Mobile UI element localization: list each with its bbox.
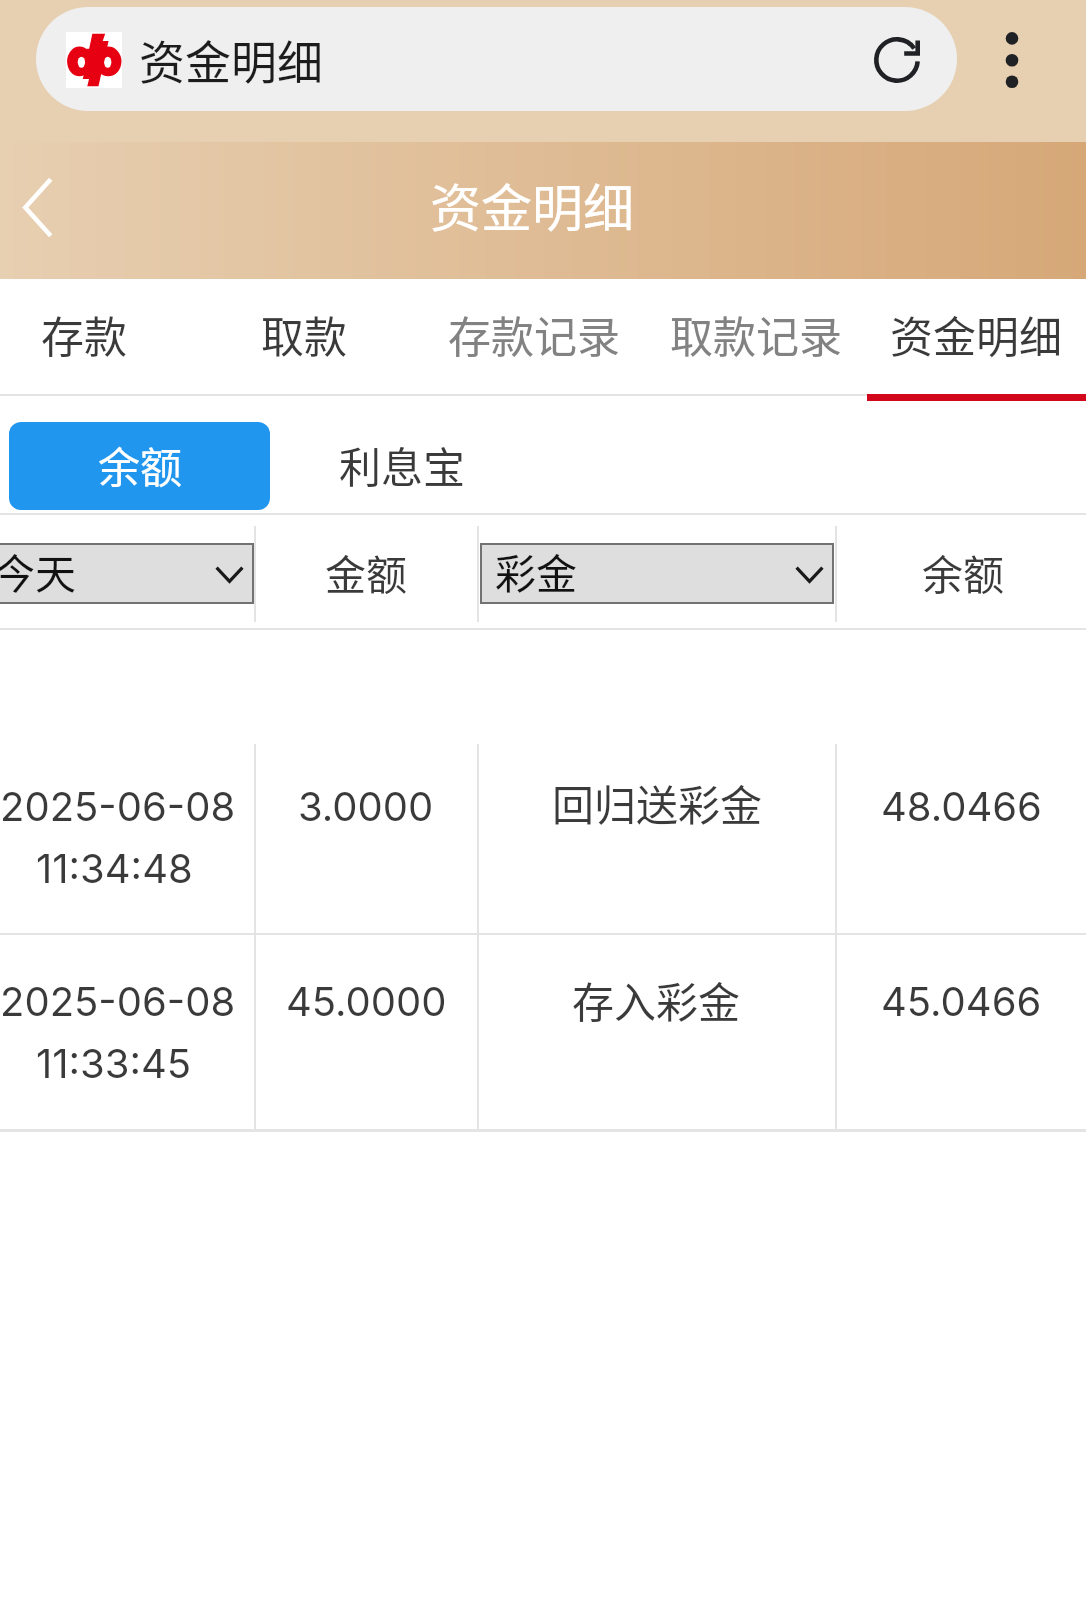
staticText: 2025-06-08 [0,782,236,830]
button[interactable] [384,279,684,396]
button[interactable] [320,422,480,510]
staticText: 回归送彩金 [552,772,763,833]
button[interactable]: More options [962,10,1062,110]
staticText: 资金明细 [890,303,1062,365]
staticText: 45.0466 [881,977,1042,1025]
staticText: 2025-06-08 [0,977,236,1025]
button[interactable] [826,279,1086,396]
button[interactable] [155,279,455,396]
staticText: 11:34:48 [36,844,193,892]
staticText: 余额 [98,434,183,495]
staticText: 存款记录 [448,303,620,365]
button[interactable]: 彩金 [480,543,834,604]
staticText: 取款记录 [670,303,842,365]
button[interactable]: 今天 [0,543,254,604]
staticText: 11:33:45 [36,1039,192,1087]
staticText: 金额 [325,542,407,601]
button[interactable]: Reload page [851,14,945,106]
staticText: 3.0000 [298,782,434,830]
staticText: 45.0000 [286,977,447,1025]
staticText: 今天 [0,541,76,600]
button[interactable] [9,422,270,510]
staticText: 取款 [261,303,347,365]
staticText: 资金明细 [139,26,323,93]
staticText: 彩金 [495,541,577,600]
staticText: 存入彩金 [572,969,741,1030]
staticText: 余额 [922,542,1004,601]
staticText: 利息宝 [339,434,466,495]
staticText: 资金明细 [430,168,635,242]
staticText: 48.0466 [881,782,1042,830]
staticText: 存款 [41,303,127,365]
button[interactable] [36,7,957,111]
button[interactable]: Back [0,142,80,279]
button[interactable] [0,279,235,396]
button[interactable] [606,279,906,396]
